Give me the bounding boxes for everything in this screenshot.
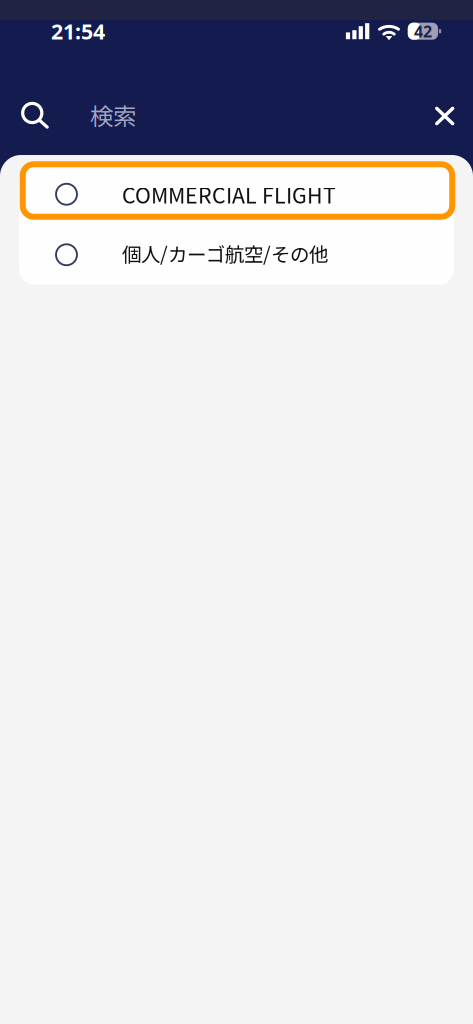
staticText: COMMERCIAL FLIGHT <box>122 179 336 210</box>
staticText: 21:54 <box>51 17 105 46</box>
staticText: 検索 <box>90 98 136 132</box>
staticText: 42 <box>414 20 432 42</box>
staticText: 個人/カーゴ航空/その他 <box>122 239 328 267</box>
button[interactable]: Search <box>0 89 400 141</box>
button[interactable]: COMMERCIAL FLIGHT <box>19 164 454 224</box>
button[interactable]: Close <box>422 93 468 139</box>
button[interactable]: 個人/カーゴ航空/その他 <box>19 224 454 285</box>
